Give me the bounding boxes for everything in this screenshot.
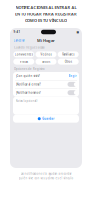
staticText: Notas (opcional) [15,99,37,103]
staticText: Visitas [20,60,28,63]
staticText: ▮▮ [76,30,78,33]
staticText: ¿Notificar horarios? [15,91,40,94]
staticText: 9:41 [13,30,20,34]
button[interactable]: Vecinos [35,51,56,57]
button[interactable]: Visitas [13,59,34,65]
staticText: NOTIFICACIONES AL ENTRAR AL [15,5,76,10]
staticText: quién vive con vos y cómo es el vínculo [18,176,73,180]
button[interactable]: ¿Notificar horarios? [13,89,79,97]
staticText: Familiares [62,53,74,56]
staticText: Cuando llegues a casa [14,46,44,49]
staticText: Opciones de Registro [14,67,45,71]
staticText: Elegir [68,74,76,78]
button[interactable]: ¿Notificar al entrar? [13,80,79,88]
staticText: Convivientes [15,53,33,56]
staticText: Guardar [42,117,54,120]
staticText: Socios [42,60,50,63]
staticText: Las notificaciones te ayudan a recordar [20,172,71,176]
staticText: Vecinos [40,53,51,56]
staticText: Cancelar [13,39,24,42]
button[interactable]: Otros [58,59,79,65]
staticText: Mi Hogar [37,38,55,43]
button[interactable]: Guardar [13,115,79,123]
staticText: Otros [65,60,72,63]
button[interactable]: ¿Con quién vivís? [13,72,79,80]
staticText: EN TU HOGAR PARA REGISTRAR [15,11,77,17]
staticText: COMO ES TU VÍNCULO [25,18,67,23]
staticText: ¿Notificar al entrar? [15,83,40,86]
staticText: ¿Con quién vivís? [15,74,39,78]
button[interactable]: Convivientes [13,51,34,57]
button[interactable]: Familiares [58,51,79,57]
button[interactable]: Socios [35,59,56,65]
button[interactable]: Cancelar [12,39,25,42]
